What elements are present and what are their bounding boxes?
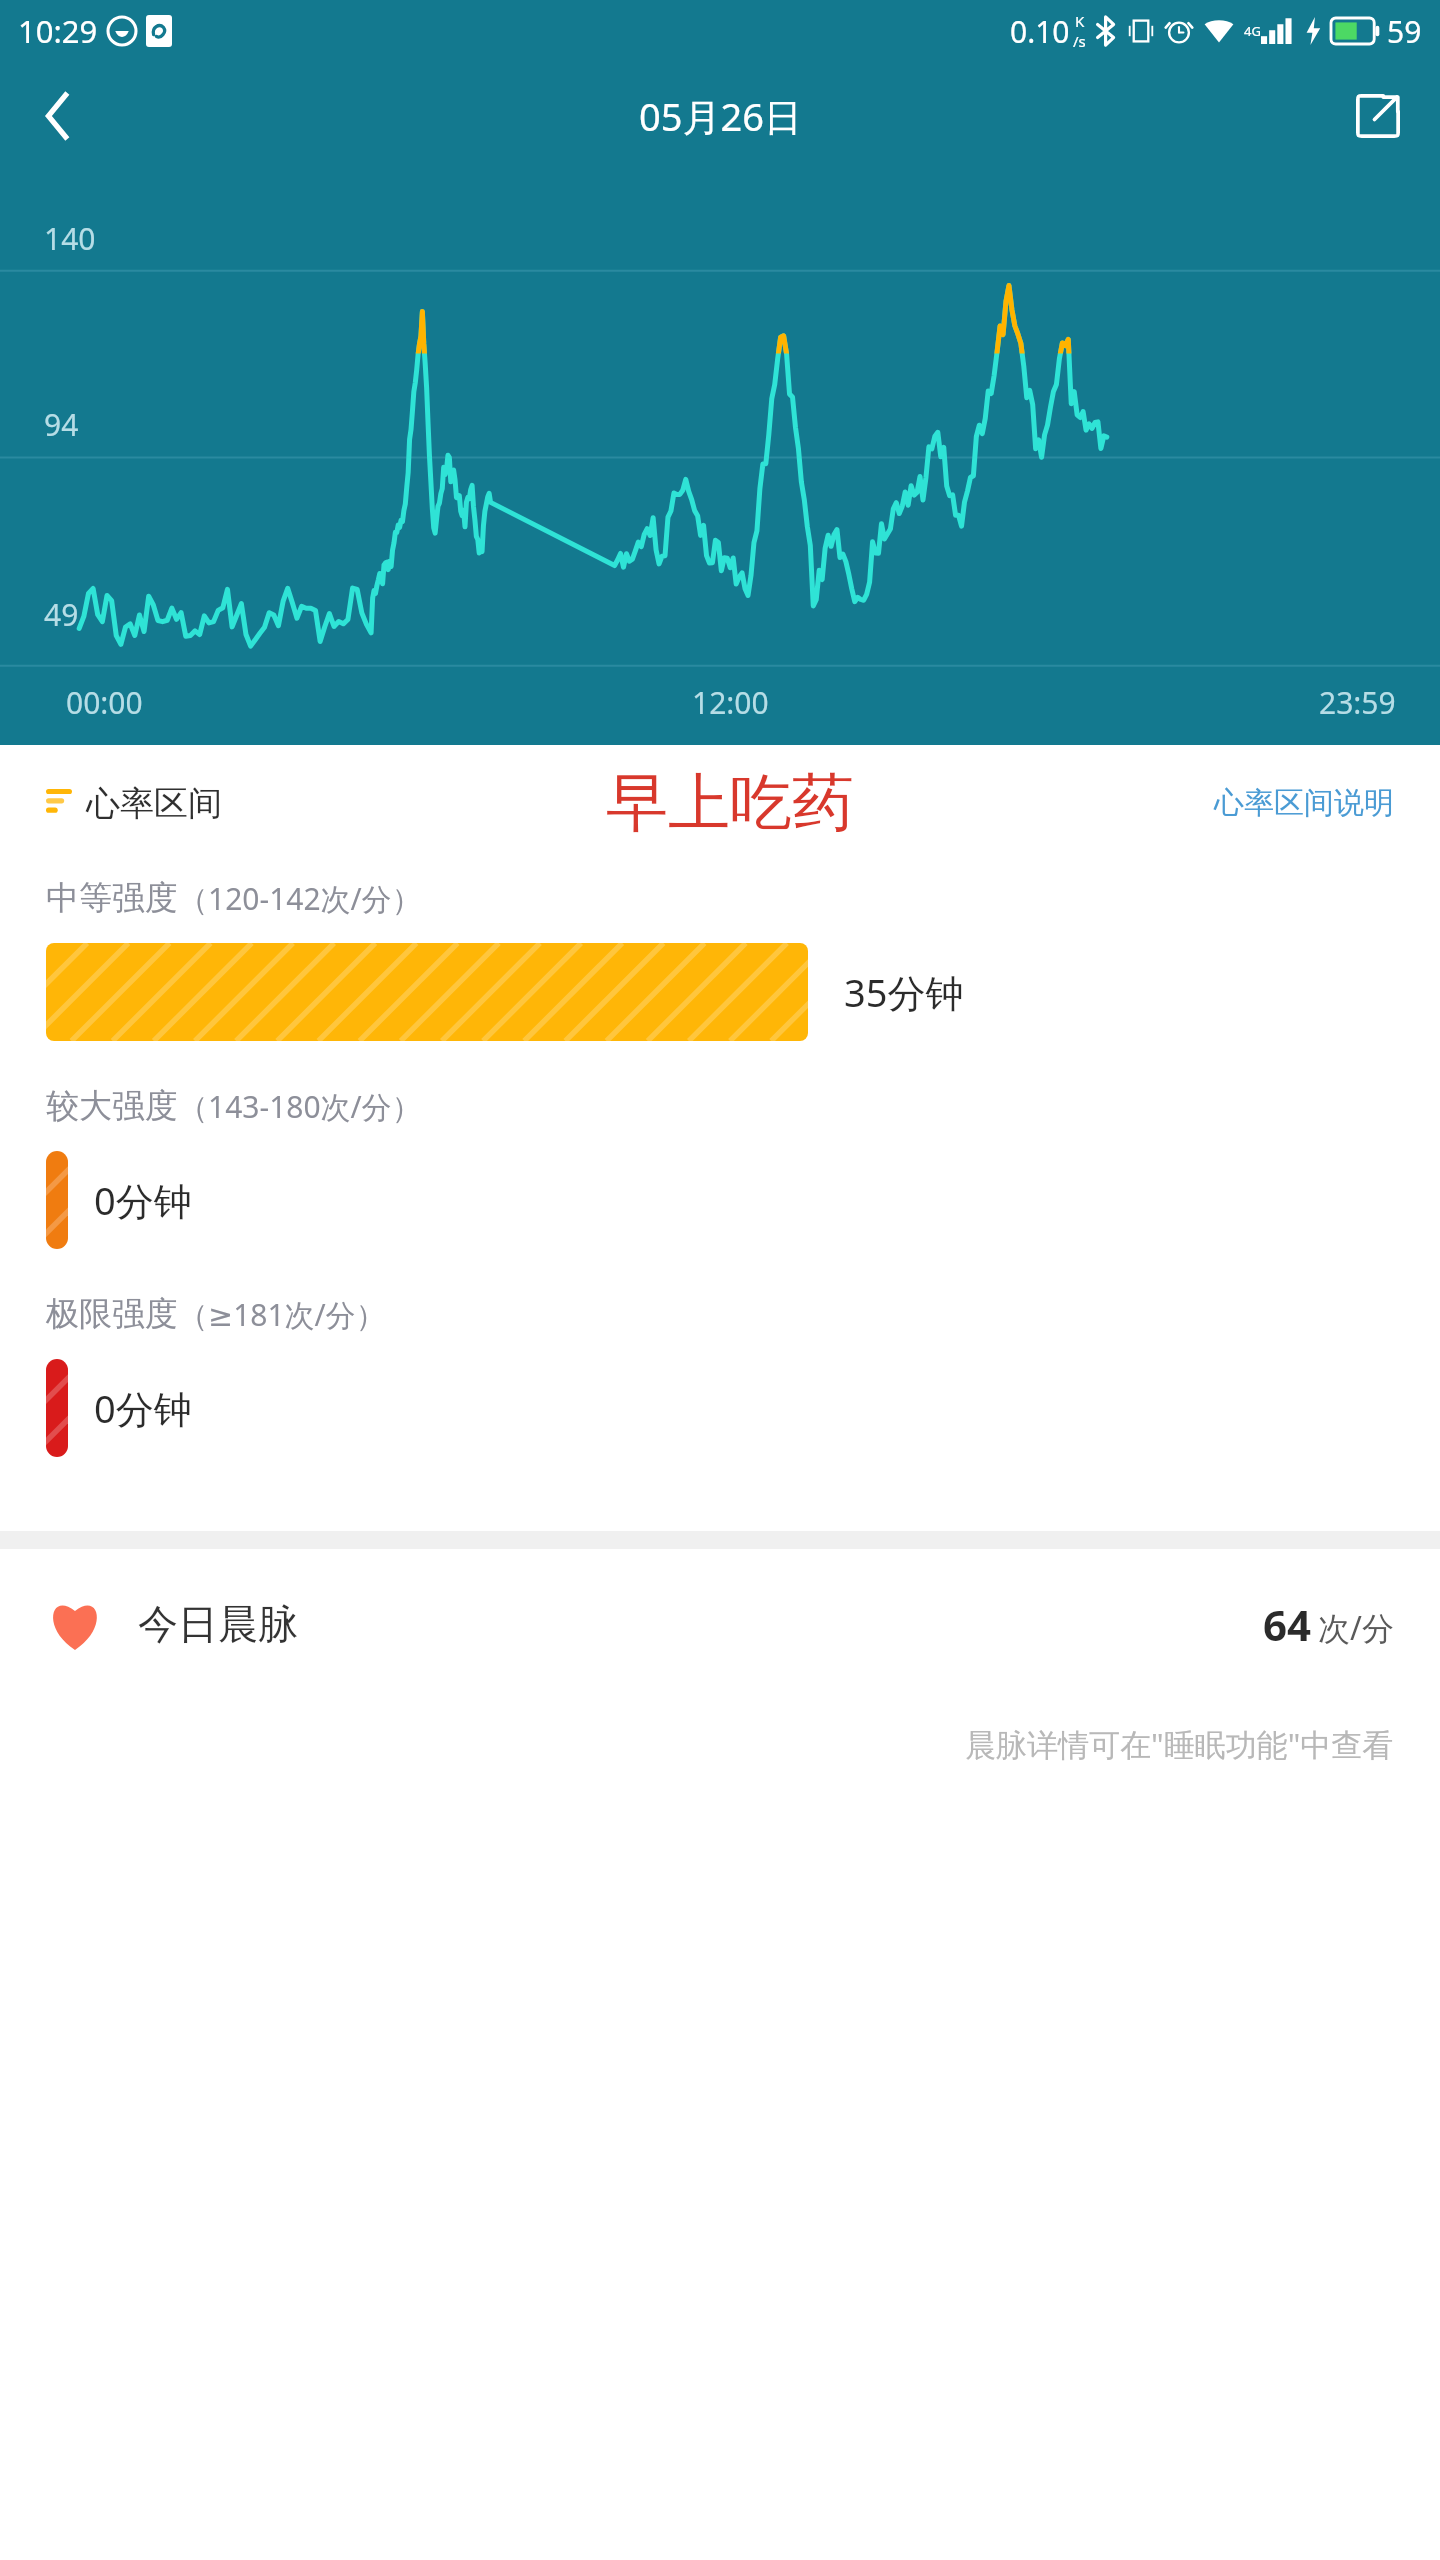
staticText: 05月26日	[639, 90, 802, 142]
staticText: 心率区间	[86, 782, 222, 825]
staticText: （143-180次/分）	[178, 1086, 422, 1127]
staticText: 49	[44, 594, 79, 635]
staticText: （120-142次/分）	[178, 878, 422, 919]
button[interactable]: 今日晨脉	[46, 1549, 1394, 1699]
staticText: 较大强度	[46, 1085, 178, 1127]
staticText: 35分钟	[844, 966, 964, 1018]
staticText: 59	[1387, 11, 1422, 52]
staticText: 次/分	[1318, 1606, 1394, 1650]
staticText: 早上吃药	[606, 764, 854, 842]
staticText: 12:00	[692, 682, 769, 723]
staticText: 0分钟	[94, 1174, 192, 1226]
staticText: 23:59	[1319, 682, 1396, 723]
staticText: 00:00	[66, 682, 143, 723]
staticText: 64	[1263, 1596, 1312, 1653]
button[interactable]: 心率区间	[46, 782, 222, 825]
staticText: 94	[44, 404, 79, 445]
staticText: （≥181次/分）	[178, 1294, 386, 1335]
staticText: K	[1075, 11, 1085, 31]
staticText: 晨脉详情可在"睡眠功能"中查看	[965, 1723, 1394, 1765]
staticText: 0分钟	[94, 1382, 192, 1434]
staticText: 今日晨脉	[138, 1599, 298, 1649]
button[interactable]: Back	[20, 78, 96, 154]
staticText: 10:29	[18, 10, 98, 52]
staticText: 中等强度	[46, 877, 178, 919]
staticText: /s	[1073, 31, 1086, 51]
button[interactable]: Share	[1340, 78, 1416, 154]
staticText: 0.10	[1010, 11, 1070, 52]
staticText: 140	[44, 218, 96, 259]
staticText: 4G	[1244, 22, 1261, 40]
button[interactable]: 心率区间说明	[1214, 784, 1394, 822]
staticText: 极限强度	[46, 1293, 178, 1335]
